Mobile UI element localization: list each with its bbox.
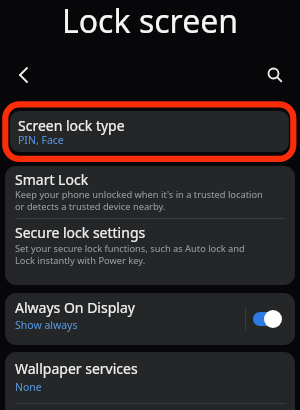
- staticText: PIN, Face: [18, 133, 64, 147]
- staticText: Lock screen: [0, 0, 300, 43]
- staticText: Wallpaper services: [15, 359, 138, 378]
- button[interactable]: [8, 60, 40, 92]
- button[interactable]: [5, 166, 295, 218]
- button[interactable]: [5, 219, 295, 285]
- button[interactable]: [259, 59, 291, 91]
- staticText: Lock instantly with Power key.: [15, 254, 146, 267]
- staticText: None: [15, 380, 42, 394]
- button[interactable]: [253, 312, 280, 326]
- staticText: Keep your phone unlocked when it's in a …: [15, 188, 263, 201]
- staticText: Set your secure lock functions, such as …: [15, 242, 245, 255]
- button[interactable]: Wallpaper services: [5, 352, 295, 410]
- staticText: or detects a trusted device nearby.: [15, 200, 166, 213]
- staticText: Smart Lock: [15, 170, 89, 189]
- staticText: Show always: [15, 318, 78, 332]
- staticText: Screen lock type: [18, 116, 125, 135]
- button[interactable]: Always On Display: [5, 293, 295, 345]
- staticText: Secure lock settings: [15, 223, 146, 242]
- button[interactable]: Screen lock type: [10, 111, 289, 152]
- staticText: Always On Display: [15, 298, 135, 317]
